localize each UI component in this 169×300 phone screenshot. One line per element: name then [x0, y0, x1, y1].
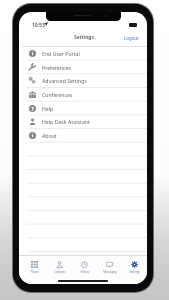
button[interactable]: Logout: [124, 35, 139, 41]
button[interactable]: Messaging: [97, 255, 122, 284]
staticText: History: [80, 270, 90, 274]
staticText: Contacts: [54, 270, 66, 274]
staticText: Help Desk Assistant: [42, 118, 90, 125]
staticText: Messaging: [103, 270, 117, 274]
button[interactable]: Phone: [22, 255, 47, 284]
staticText: Preferences: [42, 64, 71, 71]
button[interactable]: About: [19, 128, 147, 142]
button[interactable]: End User Portal: [19, 46, 147, 60]
button[interactable]: Advanced Settings: [19, 73, 147, 87]
button[interactable]: Settings: [122, 255, 147, 284]
staticText: Settings: [129, 270, 140, 274]
button[interactable]: Conferences: [19, 87, 147, 101]
staticText: Advanced Settings: [42, 77, 87, 84]
button[interactable]: History: [72, 255, 97, 284]
staticText: Phone: [30, 270, 39, 274]
staticText: Settings: [74, 34, 94, 41]
staticText: Logout: [124, 35, 139, 41]
button[interactable]: Contacts: [47, 255, 72, 284]
staticText: 10:53: [32, 22, 45, 29]
button[interactable]: Help Desk Assistant: [19, 114, 147, 128]
staticText: ?: [31, 105, 34, 112]
staticText: Conferences: [42, 91, 73, 98]
staticText: End User Portal: [42, 50, 80, 57]
staticText: About: [42, 132, 57, 139]
button[interactable]: ?: [19, 101, 147, 115]
button[interactable]: Preferences: [19, 60, 147, 74]
staticText: Help: [42, 105, 54, 112]
